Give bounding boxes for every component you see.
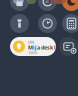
button[interactable]: Theater Mode	[62, 0, 78, 11]
staticText: Mija desk l	[28, 44, 56, 51]
button[interactable]: Water Lock	[10, 0, 29, 11]
button[interactable]: Silent Mode	[38, 0, 57, 11]
button[interactable]: Calculator	[62, 14, 78, 33]
button[interactable]: ON	[10, 37, 56, 56]
staticText: 100%	[28, 50, 37, 55]
button[interactable]: Add widget	[59, 37, 78, 56]
staticText: ON	[28, 40, 34, 45]
button[interactable]: Flashlight	[10, 14, 29, 33]
button[interactable]: Timer	[38, 14, 57, 33]
